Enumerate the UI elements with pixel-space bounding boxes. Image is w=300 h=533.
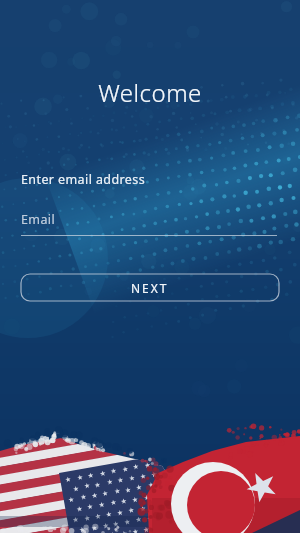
staticText: Enter email address bbox=[21, 171, 146, 188]
button[interactable]: NEXT bbox=[21, 274, 279, 301]
staticText: Email bbox=[21, 211, 56, 228]
button[interactable]: Email bbox=[21, 211, 277, 229]
staticText: NEXT bbox=[131, 280, 169, 296]
staticText: Welcome bbox=[0, 76, 300, 109]
